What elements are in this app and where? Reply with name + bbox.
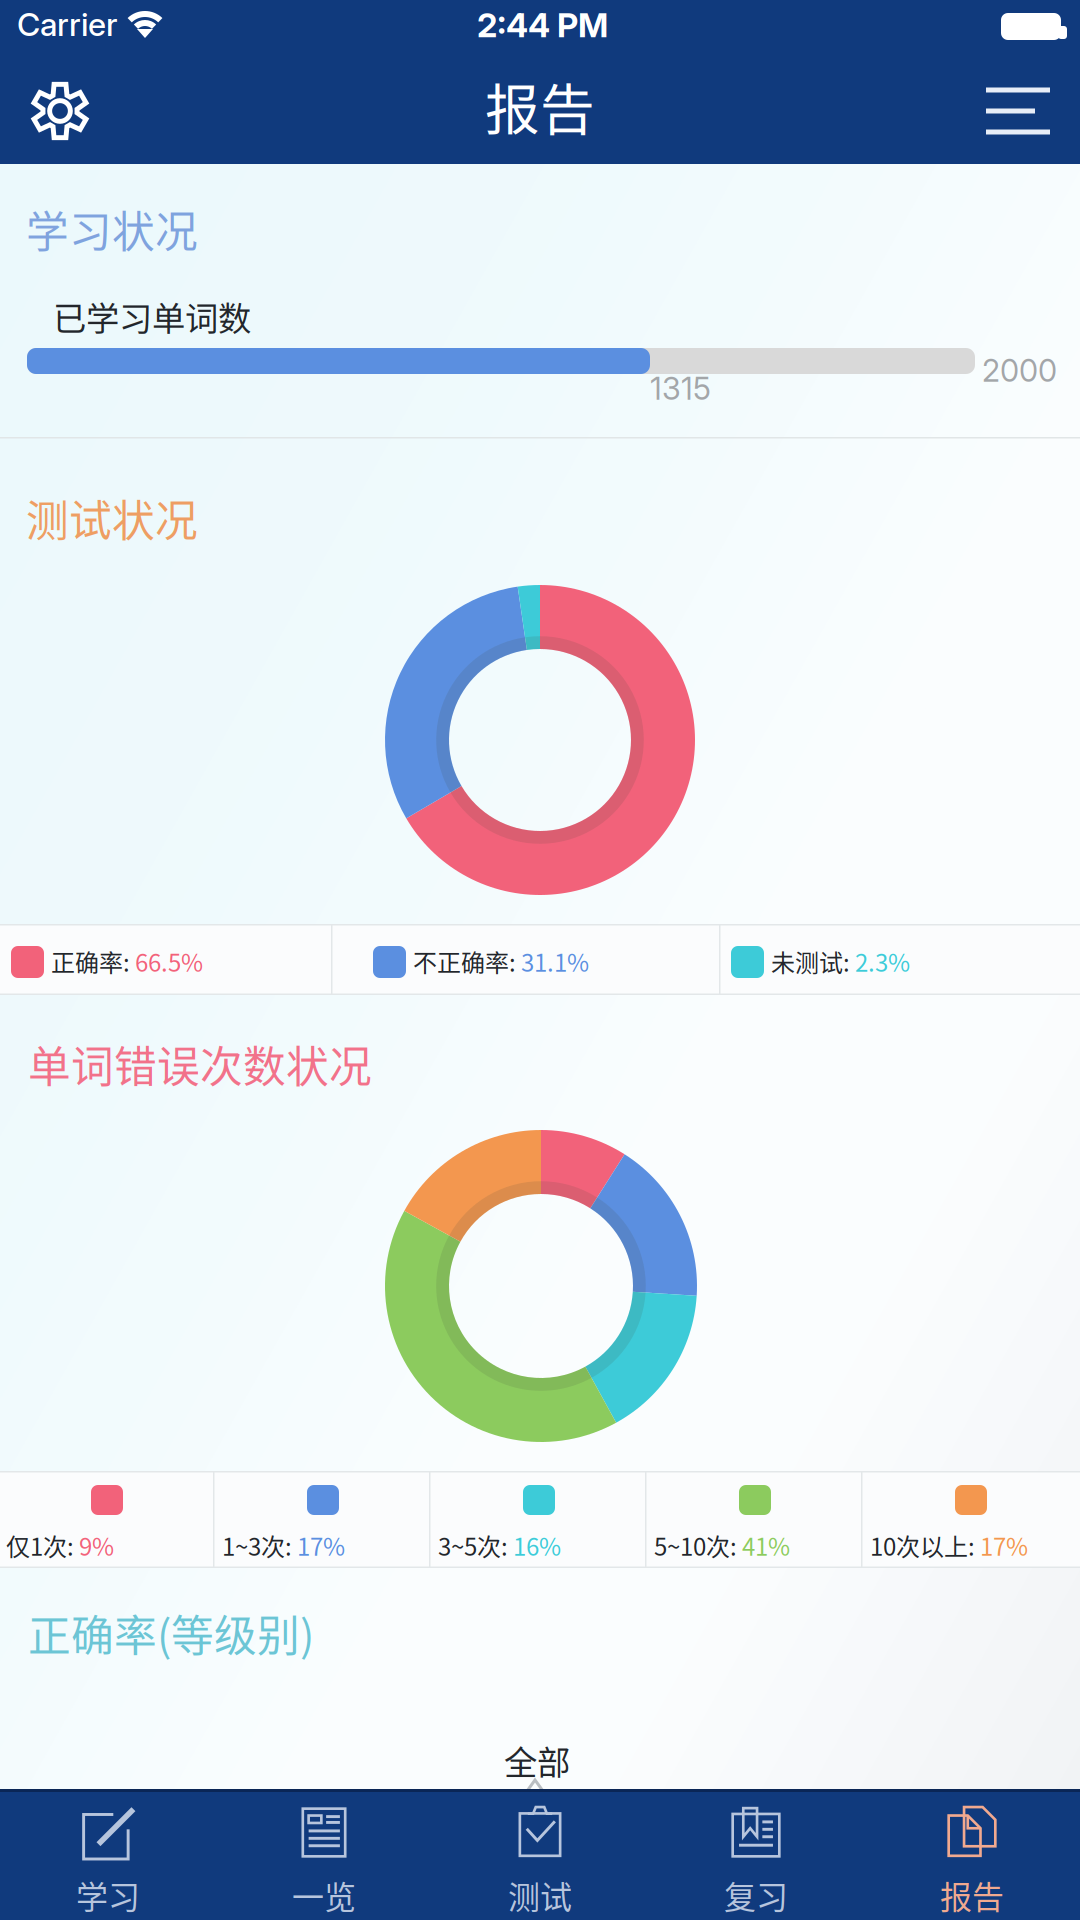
staticText: 2.3% (855, 944, 910, 979)
staticText: 16% (513, 1528, 561, 1563)
staticText: 41% (742, 1528, 790, 1563)
button[interactable]: 学习 (0, 1789, 216, 1920)
staticText: 31.1% (521, 944, 589, 979)
staticText: 9% (79, 1528, 114, 1563)
staticText: 5~10次: (654, 1528, 742, 1563)
staticText: 正确率: (51, 944, 135, 979)
staticText: 学习状况 (26, 198, 198, 260)
staticText: 复习 (724, 1872, 788, 1918)
staticText: 报告 (485, 66, 595, 145)
staticText: 测试 (508, 1872, 572, 1918)
staticText: 全部 (504, 1736, 570, 1784)
staticText: 17% (297, 1528, 345, 1563)
staticText: 2:44 PM (477, 5, 608, 45)
staticText: 测试状况 (26, 487, 198, 549)
staticText: 66.5% (135, 944, 203, 979)
staticText: 报告 (940, 1872, 1004, 1918)
button[interactable]: 报告 (864, 1789, 1080, 1920)
staticText: 仅1次: (6, 1528, 79, 1563)
button[interactable]: Settings (10, 58, 110, 164)
staticText: 一览 (292, 1872, 356, 1918)
button[interactable]: 一览 (216, 1789, 432, 1920)
staticText: 正确率(等级别) (28, 1602, 314, 1664)
staticText: 学习 (76, 1872, 140, 1918)
staticText: 不正确率: (413, 944, 521, 979)
button[interactable]: 复习 (648, 1789, 864, 1920)
button[interactable]: 测试 (432, 1789, 648, 1920)
staticText: 2000 (982, 352, 1057, 389)
staticText: Carrier (17, 5, 118, 44)
staticText: 已学习单词数 (53, 292, 251, 340)
staticText: 1~3次: (222, 1528, 297, 1563)
staticText: 17% (980, 1528, 1028, 1563)
staticText: 3~5次: (438, 1528, 513, 1563)
button[interactable]: Menu (968, 58, 1068, 164)
staticText: 未测试: (771, 944, 855, 979)
staticText: 单词错误次数状况 (28, 1033, 372, 1095)
staticText: 1315 (650, 370, 711, 407)
staticText: 10次以上: (870, 1528, 980, 1563)
